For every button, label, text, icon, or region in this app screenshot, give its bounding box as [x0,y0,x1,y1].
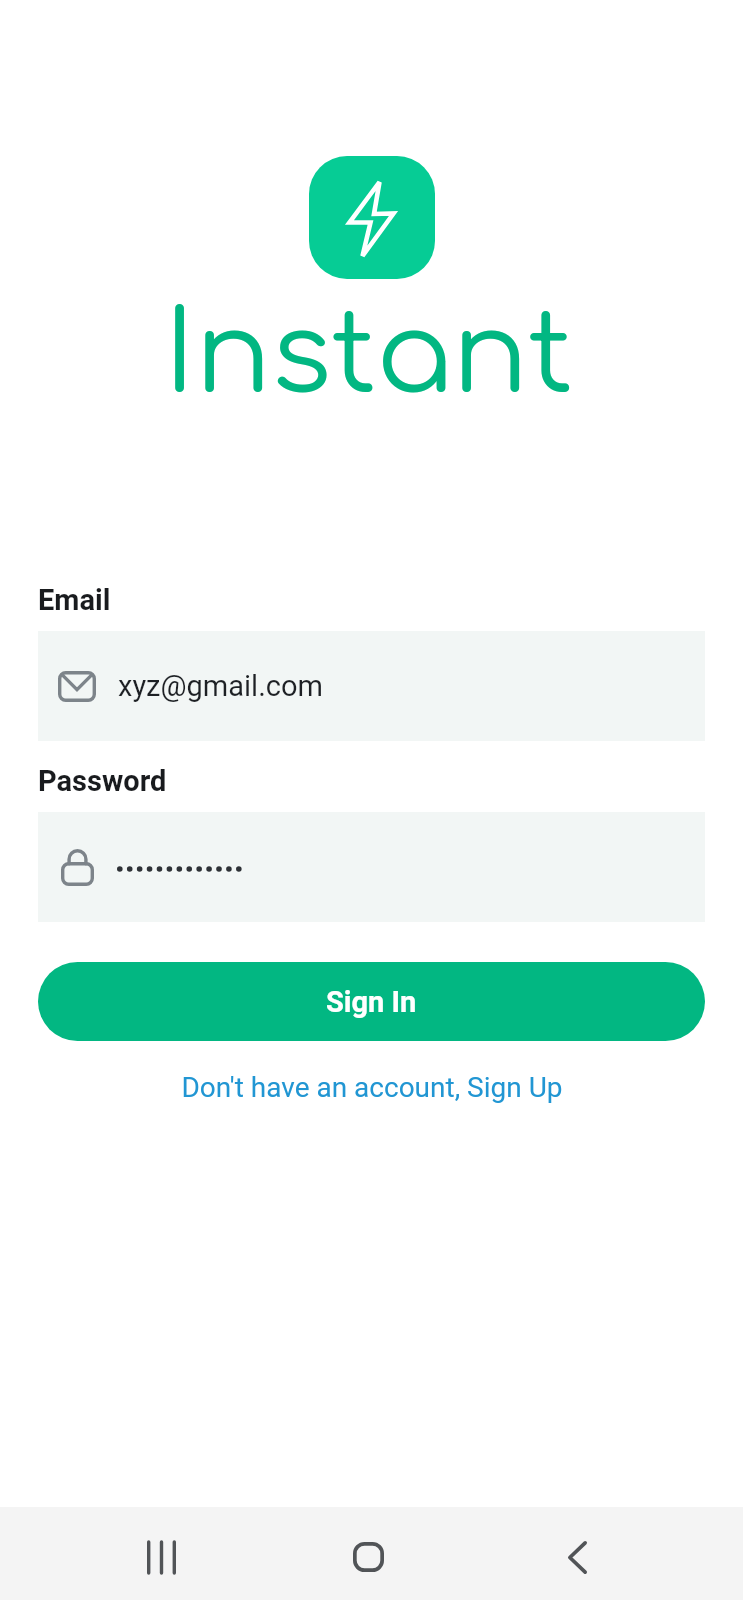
button[interactable]: Sign In [38,962,705,1041]
button[interactable]: xyz@gmail.com [38,631,705,741]
button[interactable]: Don't have an account, Sign Up [38,1071,705,1104]
button[interactable] [38,812,705,922]
button[interactable]: Home [272,1514,464,1600]
button[interactable]: Recent apps [0,1514,322,1600]
button[interactable]: Back [411,1514,743,1600]
staticText: Don't have an account, Sign Up [181,1071,563,1104]
staticText: Sign In [326,985,417,1019]
staticText: xyz@gmail.com [118,669,323,703]
staticText: Email [38,583,111,617]
staticText: Instant [164,293,574,418]
staticText: Password [38,764,167,798]
